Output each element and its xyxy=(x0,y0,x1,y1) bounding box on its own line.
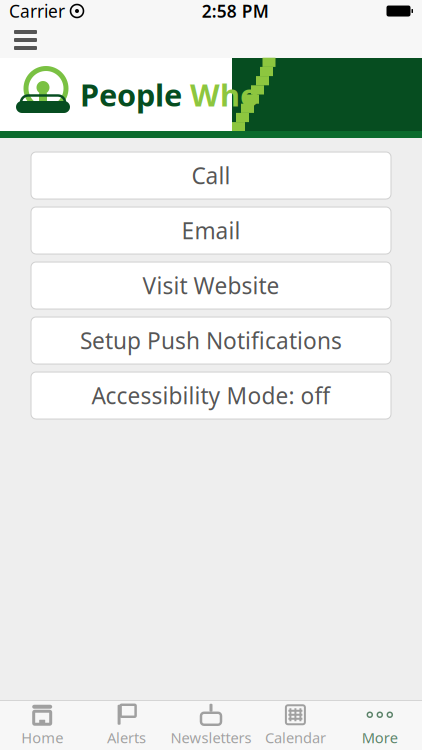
button[interactable]: Menu xyxy=(0,21,51,59)
button[interactable]: Email xyxy=(31,207,391,254)
button[interactable]: Newsletters xyxy=(169,701,253,750)
button[interactable]: Setup Push Notifications xyxy=(31,317,391,364)
staticText: Setup Push Notifications xyxy=(80,325,342,355)
staticText: Email xyxy=(181,215,240,245)
staticText: Visit Website xyxy=(142,270,279,300)
button[interactable]: Accessibility Mode: off xyxy=(31,372,391,419)
button[interactable]: Visit Website xyxy=(31,262,391,309)
staticText: Who xyxy=(182,74,259,115)
button[interactable]: Alerts xyxy=(84,701,169,750)
staticText: Alerts xyxy=(107,728,146,747)
staticText: Call xyxy=(191,160,230,190)
staticText: More xyxy=(362,728,398,747)
staticText: Newsletters xyxy=(170,728,251,747)
button[interactable]: Call xyxy=(31,152,391,199)
staticText: Home xyxy=(21,728,63,747)
staticText: Carrier xyxy=(9,0,65,22)
button[interactable]: More xyxy=(338,701,422,750)
staticText: People xyxy=(80,74,182,115)
button[interactable]: Home xyxy=(0,701,84,750)
button[interactable]: Calendar xyxy=(253,701,338,750)
staticText: Calendar xyxy=(265,728,326,747)
staticText: Care xyxy=(259,74,336,115)
staticText: Accessibility Mode: off xyxy=(91,380,330,410)
staticText: 2:58 PM xyxy=(202,0,269,22)
